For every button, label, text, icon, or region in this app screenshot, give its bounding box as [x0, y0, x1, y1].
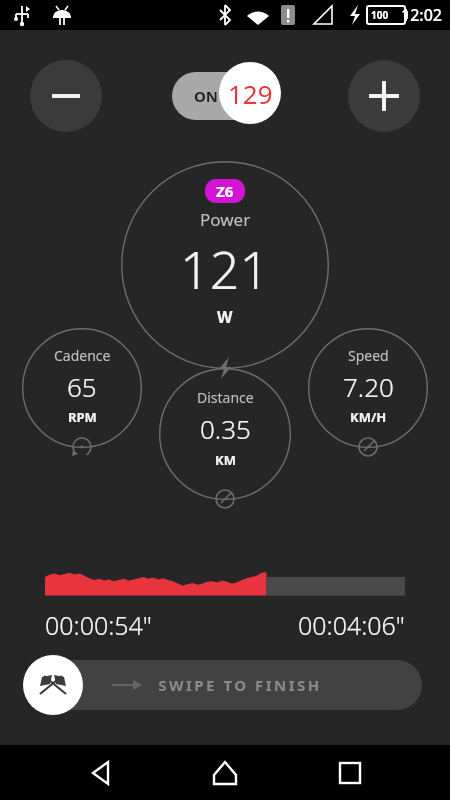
button[interactable]: Increase	[348, 60, 420, 132]
staticText: 00:04:06"	[298, 608, 405, 642]
button[interactable]: Cadence gauge	[22, 328, 142, 448]
staticText: 65	[67, 369, 97, 404]
staticText: SWIPE TO FINISH	[158, 675, 322, 695]
button[interactable]: Recents	[326, 749, 374, 797]
button[interactable]: SWIPE TO FINISH	[30, 660, 422, 710]
staticText: 0.35	[200, 411, 251, 446]
button[interactable]: Target value 129	[219, 62, 281, 124]
staticText: Speed	[348, 346, 389, 365]
staticText: 12:02	[401, 4, 442, 26]
staticText: KM/H	[350, 408, 387, 426]
button[interactable]: ON	[172, 72, 266, 120]
button[interactable]: Finish	[23, 655, 83, 715]
staticText: Distance	[197, 388, 254, 407]
staticText: RPM	[68, 408, 97, 426]
staticText: ON	[194, 86, 219, 106]
staticText: 121	[180, 233, 270, 304]
staticText: Z6	[216, 181, 234, 201]
button[interactable]: Home	[201, 749, 249, 797]
staticText: 129	[228, 76, 273, 111]
button[interactable]: Distance gauge	[159, 368, 291, 500]
staticText: 00:00:54"	[45, 608, 152, 642]
button[interactable]: Back	[77, 749, 125, 797]
staticText: W	[217, 306, 233, 328]
staticText: 7.20	[343, 369, 394, 404]
staticText: 100	[371, 8, 389, 22]
staticText: KM	[215, 451, 236, 469]
button[interactable]: Speed gauge	[308, 328, 428, 448]
staticText: Power	[200, 208, 251, 231]
staticText: Cadence	[54, 346, 111, 365]
button[interactable]: Power gauge	[121, 161, 329, 369]
button[interactable]: Decrease	[30, 60, 102, 132]
